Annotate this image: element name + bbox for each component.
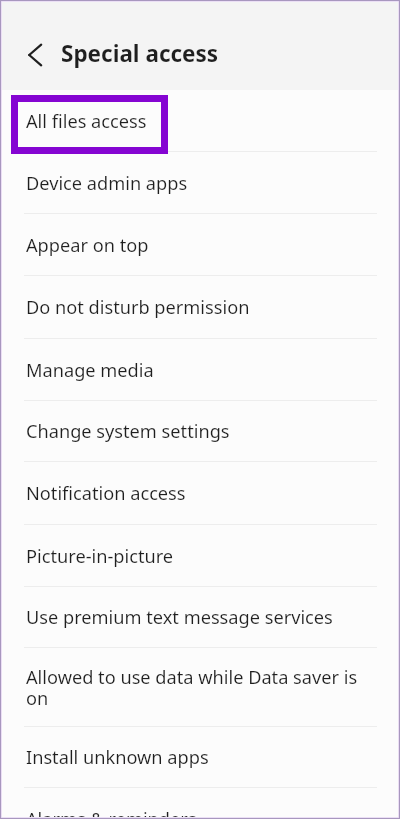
staticText: Change system settings bbox=[26, 419, 230, 444]
staticText: Special access bbox=[61, 38, 219, 69]
staticText: Device admin apps bbox=[26, 171, 188, 196]
button[interactable]: Do not disturb permission bbox=[0, 276, 400, 339]
staticText: Manage media bbox=[26, 358, 154, 383]
button[interactable]: Allowed to use data while Data saver is … bbox=[0, 648, 400, 727]
button[interactable]: Alarms & reminders bbox=[0, 788, 400, 819]
staticText: Picture-in-picture bbox=[26, 544, 174, 569]
staticText: Allowed to use data while Data saver is … bbox=[26, 665, 375, 711]
staticText: Do not disturb permission bbox=[26, 295, 250, 320]
button[interactable]: Change system settings bbox=[0, 401, 400, 462]
staticText: Alarms & reminders bbox=[26, 807, 197, 819]
button[interactable]: Notification access bbox=[0, 462, 400, 525]
button[interactable]: Appear on top bbox=[0, 214, 400, 276]
staticText: Appear on top bbox=[26, 233, 149, 258]
button[interactable]: Back bbox=[20, 39, 52, 71]
staticText: Install unknown apps bbox=[26, 745, 209, 770]
button[interactable]: Picture-in-picture bbox=[0, 525, 400, 587]
button[interactable]: Install unknown apps bbox=[0, 727, 400, 788]
staticText: All files access bbox=[26, 109, 147, 134]
staticText: Notification access bbox=[26, 481, 186, 506]
button[interactable]: Device admin apps bbox=[0, 152, 400, 214]
button[interactable]: All files access bbox=[0, 90, 400, 152]
button[interactable]: Manage media bbox=[0, 339, 400, 401]
staticText: Use premium text message services bbox=[26, 605, 333, 630]
button[interactable]: Use premium text message services bbox=[0, 587, 400, 648]
